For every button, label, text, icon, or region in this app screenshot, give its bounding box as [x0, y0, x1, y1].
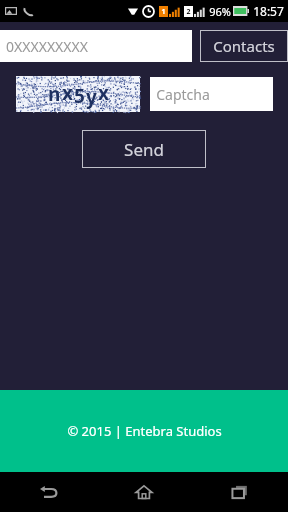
button[interactable]: n — [16, 76, 140, 112]
staticText: n — [48, 81, 61, 107]
staticText: Send — [124, 138, 164, 161]
staticText: x — [98, 80, 109, 106]
button[interactable]: Contacts — [200, 30, 288, 62]
button[interactable]: Send — [82, 130, 206, 168]
staticText: 0XXXXXXXXX — [6, 37, 88, 56]
staticText: x — [62, 80, 73, 106]
staticText: 1 — [161, 7, 166, 17]
button[interactable]: 0XXXXXXXXX — [0, 30, 192, 62]
staticText: y — [86, 84, 97, 110]
button[interactable]: Captcha — [150, 77, 273, 111]
staticText: 96% — [209, 4, 231, 19]
staticText: © 2015 | Entebra Studios — [67, 422, 222, 440]
button[interactable]: Recents — [192, 472, 288, 512]
staticText: 2 — [186, 7, 191, 17]
button[interactable]: Home — [96, 472, 192, 512]
button[interactable]: Back — [0, 472, 96, 512]
staticText: 5 — [74, 83, 85, 109]
staticText: Captcha — [156, 85, 210, 104]
staticText: 18:57 — [253, 3, 284, 19]
staticText: Contacts — [213, 36, 275, 56]
